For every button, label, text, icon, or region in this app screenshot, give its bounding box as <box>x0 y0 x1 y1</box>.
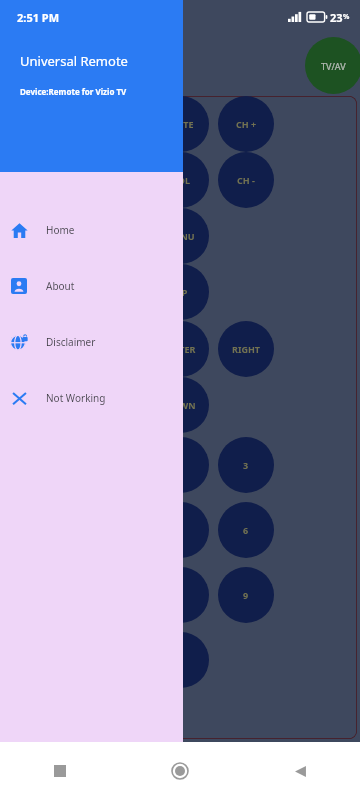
staticText: UP <box>175 286 188 298</box>
staticText: 23 <box>330 10 343 25</box>
button[interactable]: DOWN <box>153 377 209 433</box>
button[interactable]: CH - <box>218 152 274 208</box>
staticText: MUTE <box>168 118 194 130</box>
button[interactable]: MENU <box>153 208 209 264</box>
button[interactable]: Recents <box>0 742 120 800</box>
button[interactable]: 2 <box>153 437 209 493</box>
staticText: 3 <box>243 459 249 471</box>
staticText: Not Working <box>46 391 106 405</box>
staticText: About <box>46 279 75 293</box>
staticText: Home <box>46 223 75 237</box>
button[interactable]: 6 <box>218 502 274 558</box>
staticText: Disclaimer <box>46 335 96 349</box>
button[interactable]: UP <box>153 264 209 320</box>
button[interactable]: Back <box>240 742 360 800</box>
button[interactable]: 5 <box>153 502 209 558</box>
staticText: VOL <box>172 174 190 186</box>
staticText: 6 <box>243 524 249 536</box>
staticText: 8 <box>178 589 184 601</box>
staticText: CH - <box>237 174 255 186</box>
button[interactable]: Home <box>120 742 240 800</box>
button[interactable]: 8 <box>153 567 209 623</box>
staticText: Universal Remote <box>20 52 128 70</box>
staticText: Device:Remote for Vizio TV <box>20 86 127 97</box>
staticText: 9 <box>243 589 249 601</box>
staticText: 0 <box>178 654 184 666</box>
button[interactable]: 3 <box>218 437 274 493</box>
button[interactable]: About <box>0 258 183 314</box>
button[interactable]: 9 <box>218 567 274 623</box>
button[interactable]: CH + <box>218 96 274 152</box>
button[interactable]: ENTER <box>153 321 209 377</box>
button[interactable]: Not Working <box>0 370 183 426</box>
button[interactable]: MUTE <box>153 96 209 152</box>
button[interactable]: TV/AV <box>305 37 360 94</box>
staticText: MENU <box>167 230 195 242</box>
staticText: 5 <box>178 524 184 536</box>
staticText: DOWN <box>166 399 196 411</box>
button[interactable]: VOL <box>153 152 209 208</box>
staticText: 2 <box>178 459 184 471</box>
staticText: ENTER <box>167 343 196 355</box>
button[interactable]: 0 <box>153 632 209 688</box>
staticText: % <box>343 12 350 22</box>
button[interactable]: Disclaimer <box>0 314 183 370</box>
button[interactable]: RIGHT <box>218 321 274 377</box>
button[interactable]: Home <box>0 202 183 258</box>
staticText: TV/AV <box>321 60 346 72</box>
staticText: 2:51 PM <box>17 10 60 25</box>
staticText: CH + <box>236 118 257 130</box>
staticText: RIGHT <box>232 343 260 355</box>
